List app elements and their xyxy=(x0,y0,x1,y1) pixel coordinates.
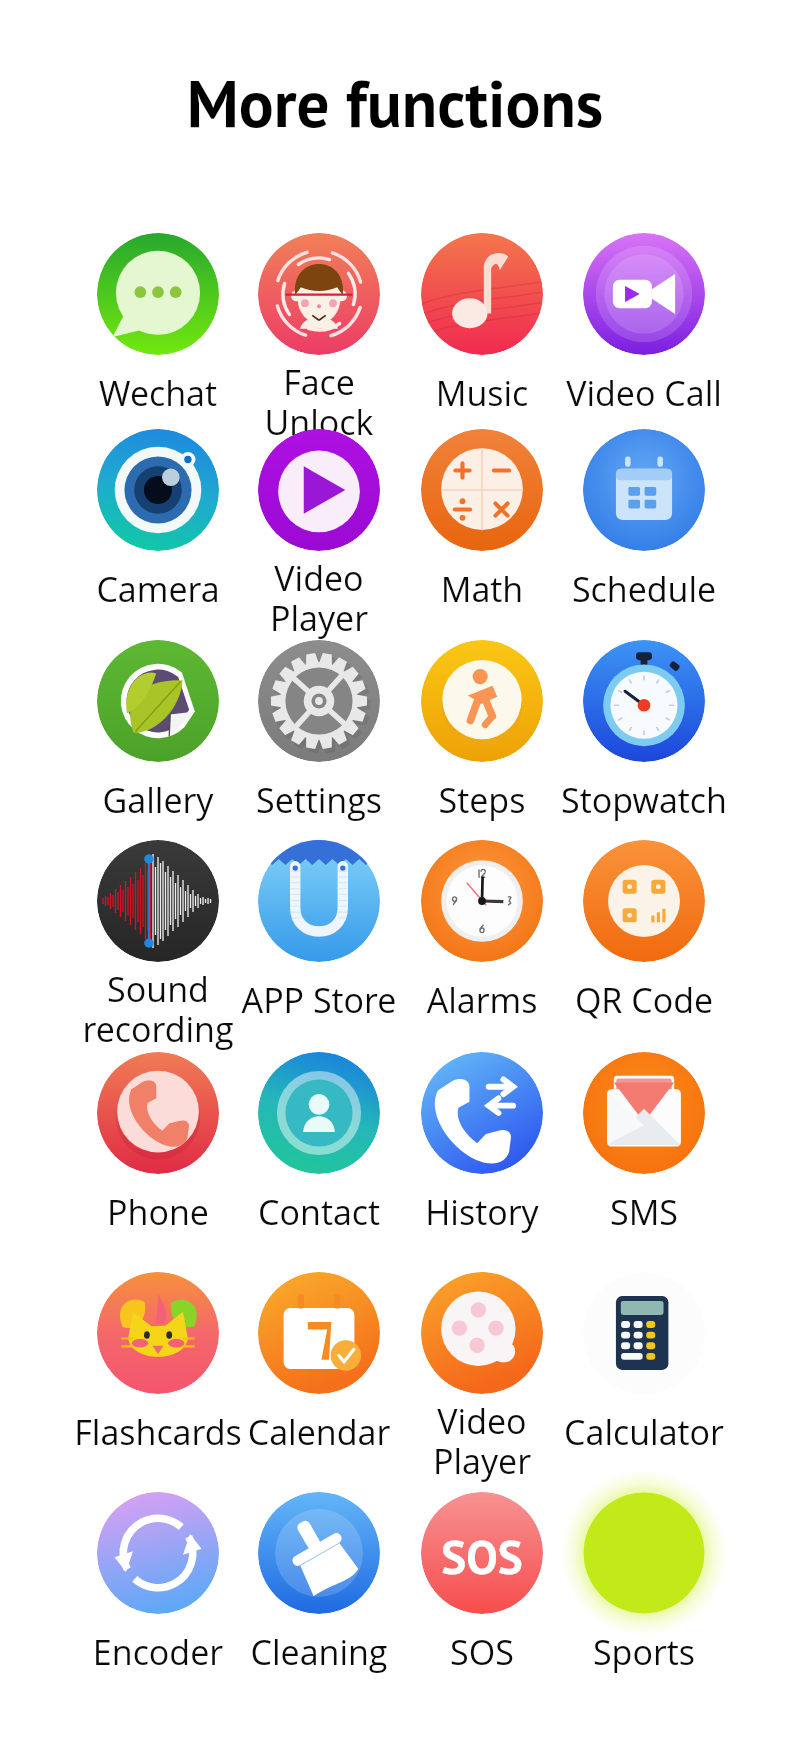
button[interactable]: Steps xyxy=(402,634,562,842)
staticText: Calculator xyxy=(554,1409,734,1455)
staticText: Video Player xyxy=(229,555,409,641)
staticText: Settings xyxy=(229,777,409,823)
button[interactable]: SOS xyxy=(402,1486,562,1694)
button[interactable]: QR Code xyxy=(564,834,724,1042)
button[interactable]: Schedule xyxy=(564,423,724,631)
button[interactable]: Sports xyxy=(564,1486,724,1694)
staticText: QR Code xyxy=(554,977,734,1023)
staticText: Face Unlock xyxy=(229,359,409,445)
button[interactable]: Face Unlock xyxy=(239,227,399,435)
staticText: Sports xyxy=(554,1629,734,1675)
button[interactable]: History xyxy=(402,1046,562,1254)
button[interactable]: Contact xyxy=(239,1046,399,1254)
button[interactable]: Phone xyxy=(78,1046,238,1254)
staticText: Math xyxy=(392,566,572,612)
staticText: Sound recording xyxy=(68,966,248,1052)
staticText: SOS xyxy=(392,1526,572,1587)
staticText: SMS xyxy=(554,1189,734,1235)
button[interactable]: Music xyxy=(402,227,562,435)
button[interactable]: Encoder xyxy=(78,1486,238,1694)
staticText: Gallery xyxy=(68,777,248,823)
staticText: Phone xyxy=(68,1189,248,1235)
staticText: Encoder xyxy=(68,1629,248,1675)
button[interactable]: Calculator xyxy=(564,1266,724,1474)
staticText: Video Player xyxy=(392,1398,572,1484)
staticText: Cleaning xyxy=(229,1629,409,1675)
staticText: Flashcards xyxy=(68,1409,248,1455)
staticText: Stopwatch xyxy=(554,777,734,823)
staticText: SOS xyxy=(392,1629,572,1675)
button[interactable]: APP Store xyxy=(239,834,399,1042)
staticText: APP Store xyxy=(229,977,409,1023)
staticText: Calendar xyxy=(229,1409,409,1455)
staticText: Schedule xyxy=(554,566,734,612)
button[interactable]: Cleaning xyxy=(239,1486,399,1694)
button[interactable]: Settings xyxy=(239,634,399,842)
button[interactable]: Camera xyxy=(78,423,238,631)
button[interactable]: Gallery xyxy=(78,634,238,842)
staticText: Wechat xyxy=(68,370,248,416)
button[interactable]: Flashcards xyxy=(78,1266,238,1474)
button[interactable]: Calendar xyxy=(239,1266,399,1474)
staticText: Steps xyxy=(392,777,572,823)
staticText: Video Call xyxy=(554,370,734,416)
button[interactable]: Math xyxy=(402,423,562,631)
button[interactable]: Sound recording xyxy=(78,834,238,1042)
button[interactable]: Stopwatch xyxy=(564,634,724,842)
button[interactable]: SMS xyxy=(564,1046,724,1254)
staticText: Alarms xyxy=(392,977,572,1023)
staticText: Music xyxy=(392,370,572,416)
button[interactable]: Video Player xyxy=(402,1266,562,1474)
staticText: Camera xyxy=(68,566,248,612)
staticText: Contact xyxy=(229,1189,409,1235)
button[interactable]: Video Player xyxy=(239,423,399,631)
button[interactable]: Alarms xyxy=(402,834,562,1042)
button[interactable]: Video Call xyxy=(564,227,724,435)
staticText: History xyxy=(392,1189,572,1235)
button[interactable]: Wechat xyxy=(78,227,238,435)
staticText: More functions xyxy=(0,61,790,145)
